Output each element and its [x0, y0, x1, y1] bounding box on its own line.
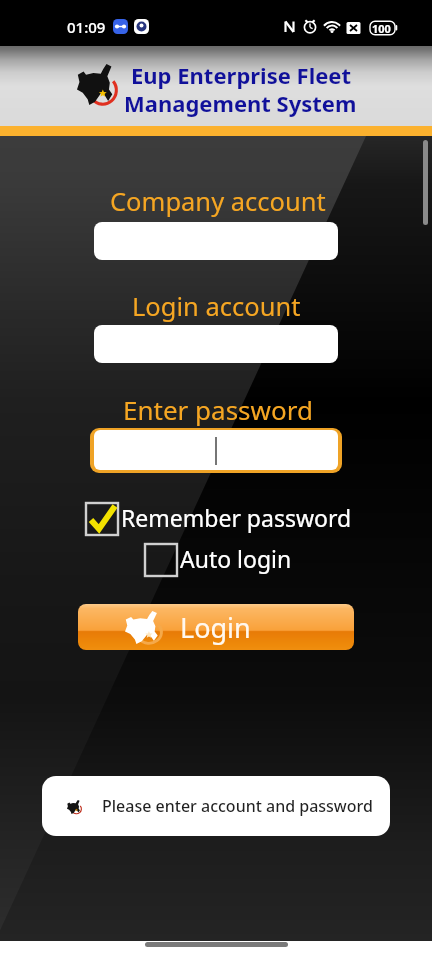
staticText: Login [180, 609, 251, 646]
staticText: Please enter account and password [102, 795, 373, 817]
button[interactable]: Auto login [145, 544, 293, 577]
button[interactable] [94, 222, 338, 260]
button[interactable]: Login [78, 604, 354, 650]
button[interactable] [90, 428, 342, 473]
staticText: 01:09 [67, 17, 106, 37]
button[interactable]: Remember password [86, 503, 351, 536]
staticText: Eup Enterprise Fleet [131, 60, 352, 90]
staticText: Management System [124, 88, 357, 118]
staticText: Remember password [121, 502, 352, 533]
staticText: 100 [372, 21, 391, 36]
staticText: Enter password [123, 392, 313, 427]
button[interactable] [94, 325, 338, 363]
staticText: Login account [132, 289, 301, 324]
staticText: Company account [110, 184, 326, 219]
staticText: Auto login [180, 543, 292, 574]
